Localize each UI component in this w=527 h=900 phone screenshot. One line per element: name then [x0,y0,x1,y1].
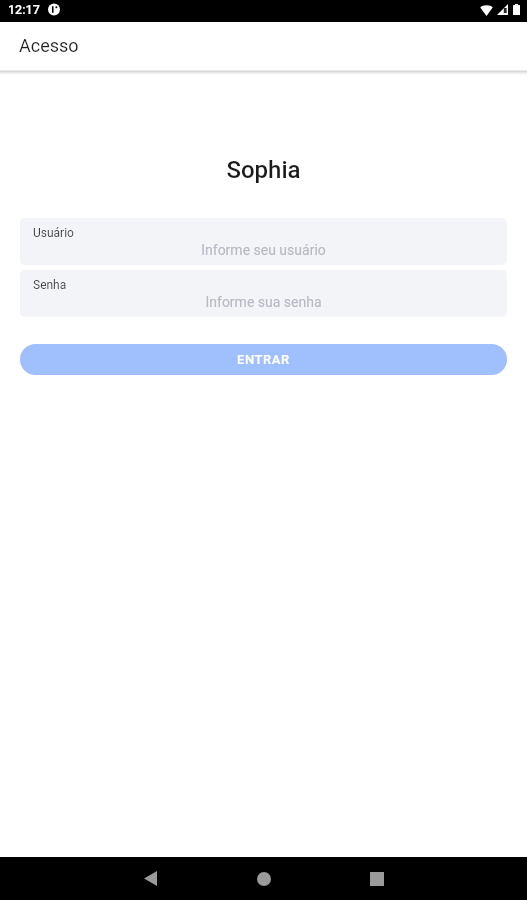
button[interactable]: Recent apps [348,857,405,900]
staticText: Informe sua senha [20,294,507,310]
staticText: Informe seu usuário [20,242,507,258]
staticText: Acesso [19,35,79,56]
button[interactable]: Home [235,857,292,900]
button[interactable]: Back [122,857,179,900]
button[interactable]: Usuário [20,218,507,265]
staticText: Usuário [33,226,74,240]
button[interactable]: ENTRAR [20,344,507,375]
staticText: 12:17 [8,2,40,17]
staticText: Sophia [0,156,527,184]
staticText: Senha [33,278,67,292]
staticText: ENTRAR [237,352,290,367]
button[interactable]: Senha [20,270,507,317]
